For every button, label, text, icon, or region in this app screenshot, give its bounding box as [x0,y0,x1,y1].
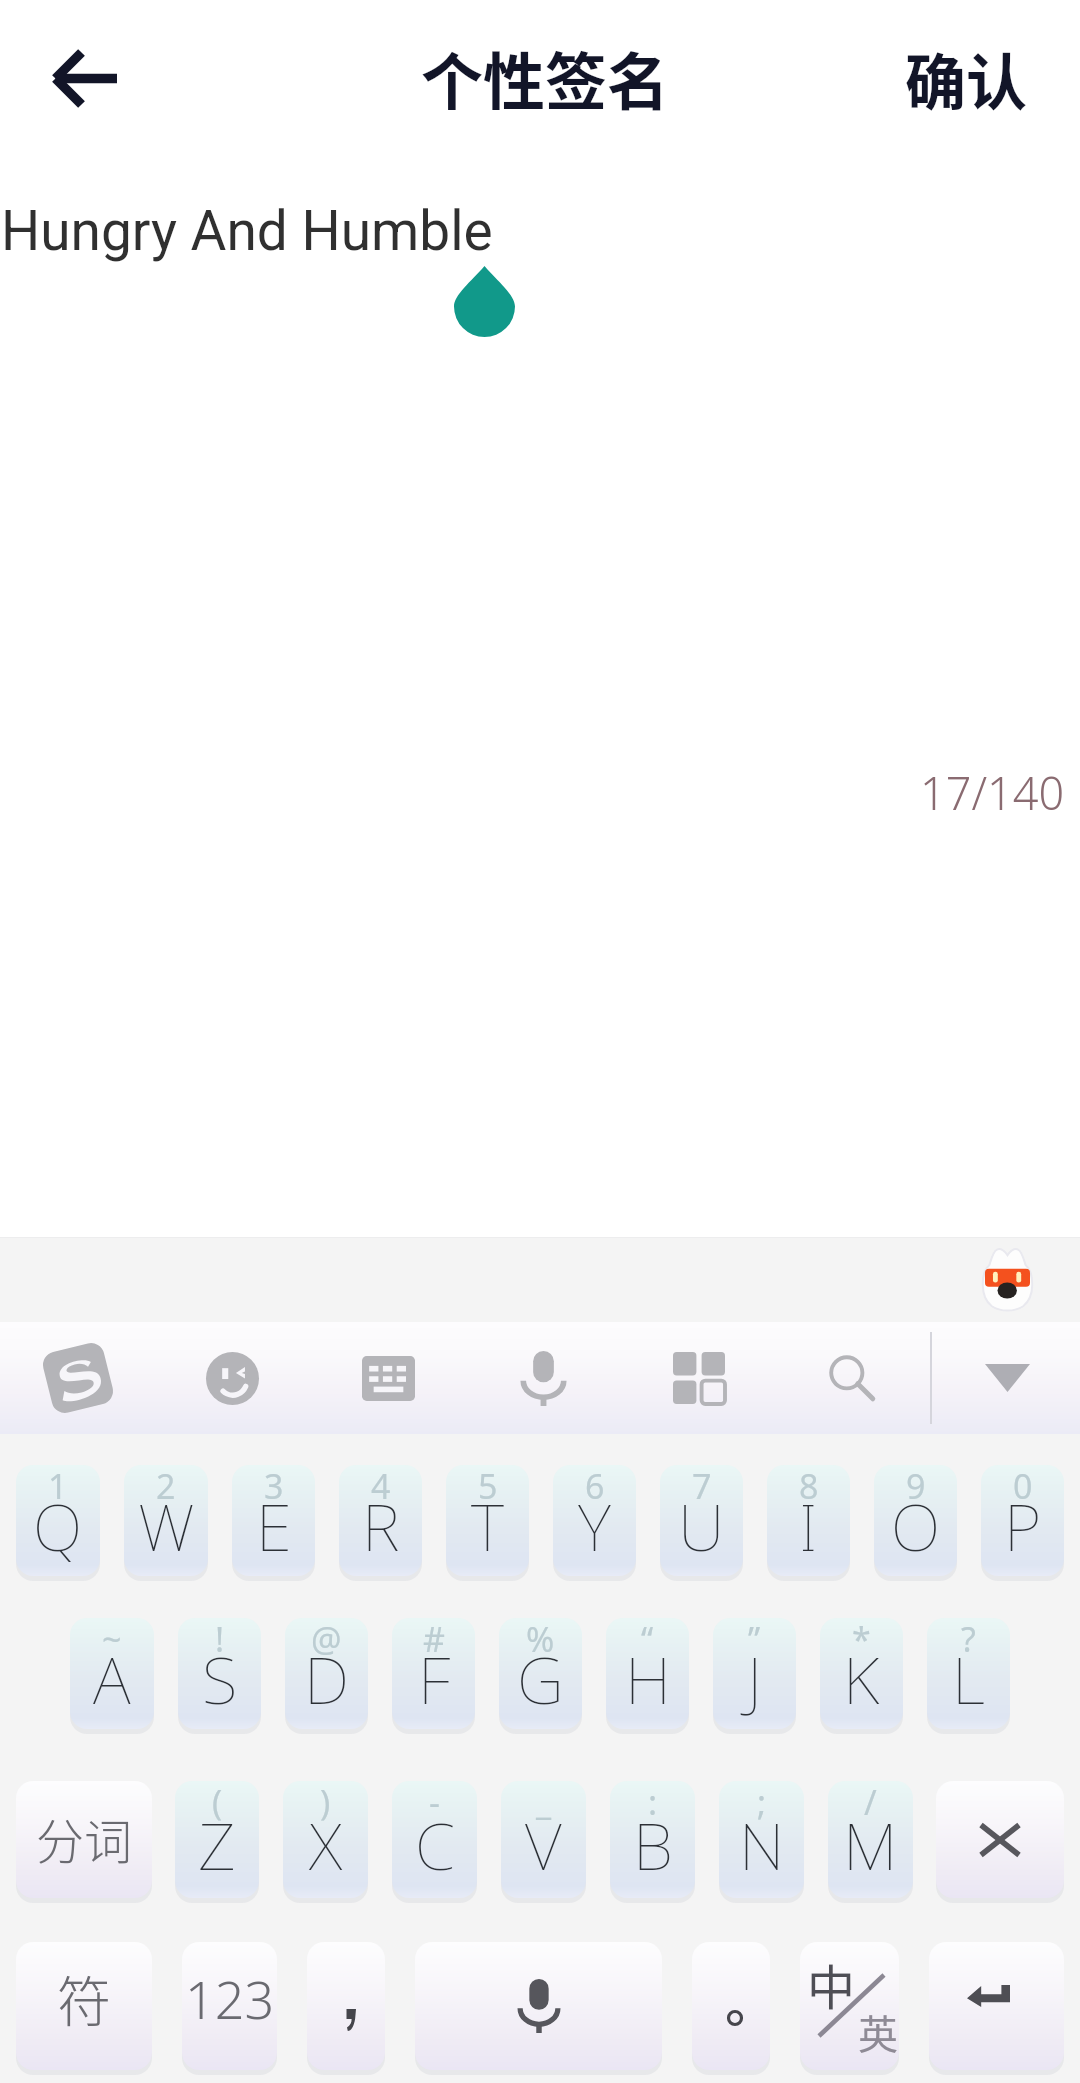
staticText: S [202,1635,238,1724]
staticText: ! [215,1618,225,1662]
button[interactable]: 8 [767,1465,850,1576]
button[interactable] [415,1942,662,2070]
button[interactable]: # [392,1618,475,1729]
button[interactable]: ~ [70,1618,154,1729]
button[interactable]: ) [283,1781,368,1898]
staticText: G [517,1635,564,1724]
button[interactable]: Back [32,27,134,129]
staticText: V [525,1801,562,1890]
staticText: 17/140 [920,762,1065,823]
button[interactable]: ” [713,1618,796,1729]
staticText: _ [536,1781,552,1825]
button[interactable]: 123 [182,1942,277,2070]
button[interactable] [692,1942,770,2070]
button[interactable]: ( [175,1781,259,1898]
staticText: C [415,1801,455,1890]
button[interactable]: Sogou assistant [979,1248,1036,1310]
staticText: D [304,1635,349,1724]
staticText: W [138,1482,195,1571]
button[interactable]: Keyboard layout [320,1322,456,1434]
staticText: 确认 [905,34,1028,122]
staticText: “ [641,1618,654,1662]
staticText: N [739,1801,785,1890]
staticText: K [843,1635,880,1724]
staticText: R [362,1482,400,1571]
staticText: 0 [1013,1465,1033,1509]
button[interactable]: ? [927,1618,1010,1729]
staticText: O [891,1482,941,1571]
staticText: ? [961,1618,976,1662]
staticText: I [799,1482,818,1571]
staticText: 6 [585,1465,605,1509]
button[interactable]: 1 [16,1465,100,1576]
staticText: ” [748,1618,761,1662]
staticText: ) [320,1781,331,1825]
button[interactable]: * [820,1618,903,1729]
staticText: 9 [906,1465,926,1509]
button[interactable]: : [610,1781,695,1898]
staticText: 英 [858,2003,898,2061]
staticText: 个性签名 [421,33,670,123]
staticText: % [526,1618,555,1662]
button[interactable]: “ [606,1618,689,1729]
staticText: 5 [478,1465,498,1509]
button[interactable]: - [392,1781,477,1898]
staticText: A [93,1635,131,1724]
button[interactable]: % [499,1618,582,1729]
button[interactable]: 2 [124,1465,208,1576]
staticText: - [429,1781,440,1825]
button[interactable]: ; [719,1781,804,1898]
staticText: F [418,1635,450,1724]
button[interactable]: _ [501,1781,586,1898]
button[interactable]: Sogou input [10,1322,146,1434]
button[interactable] [929,1942,1064,2070]
staticText: : [648,1781,658,1825]
staticText: 3 [264,1465,284,1509]
staticText: @ [311,1618,342,1662]
staticText: 中 [807,1949,856,2019]
staticText: Hungry And Humble [1,199,493,263]
staticText: 123 [185,1963,275,2034]
button[interactable]: Emoji [164,1322,300,1434]
button[interactable]: More [631,1322,767,1434]
button[interactable]: 确认 [849,16,1080,140]
button[interactable]: Voice input [475,1322,611,1434]
staticText: L [952,1635,985,1724]
button[interactable] [307,1942,385,2070]
staticText: B [633,1801,673,1890]
button[interactable]: 分词 [16,1781,152,1898]
staticText: * [852,1618,871,1662]
button[interactable]: 5 [446,1465,529,1576]
staticText: E [256,1482,292,1571]
staticText: T [471,1482,504,1571]
button[interactable]: 9 [874,1465,957,1576]
staticText: 符 [57,1959,111,2037]
button[interactable]: 4 [339,1465,422,1576]
staticText: ~ [102,1618,122,1662]
staticText: 2 [156,1465,176,1509]
staticText: 8 [799,1465,819,1509]
staticText: Y [578,1482,611,1571]
button[interactable]: 7 [660,1465,743,1576]
button[interactable]: 符 [16,1942,152,2070]
button[interactable]: ! [178,1618,261,1729]
button[interactable]: Search [784,1322,920,1434]
staticText: J [747,1635,763,1724]
button[interactable]: @ [285,1618,368,1729]
staticText: P [1004,1482,1042,1571]
staticText: Z [198,1801,236,1890]
button[interactable]: 3 [232,1465,315,1576]
staticText: U [678,1482,725,1571]
staticText: ( [212,1781,223,1825]
staticText: ; [757,1781,767,1825]
button[interactable]: 0 [981,1465,1064,1576]
button[interactable]: Hide keyboard [952,1322,1062,1434]
staticText: H [625,1635,671,1724]
staticText: Q [33,1482,83,1571]
button[interactable]: 6 [553,1465,636,1576]
staticText: 分词 [36,1803,133,1873]
button[interactable]: / [828,1781,913,1898]
staticText: 1 [48,1465,68,1509]
button[interactable]: 中 [800,1942,899,2070]
button[interactable] [936,1781,1064,1898]
